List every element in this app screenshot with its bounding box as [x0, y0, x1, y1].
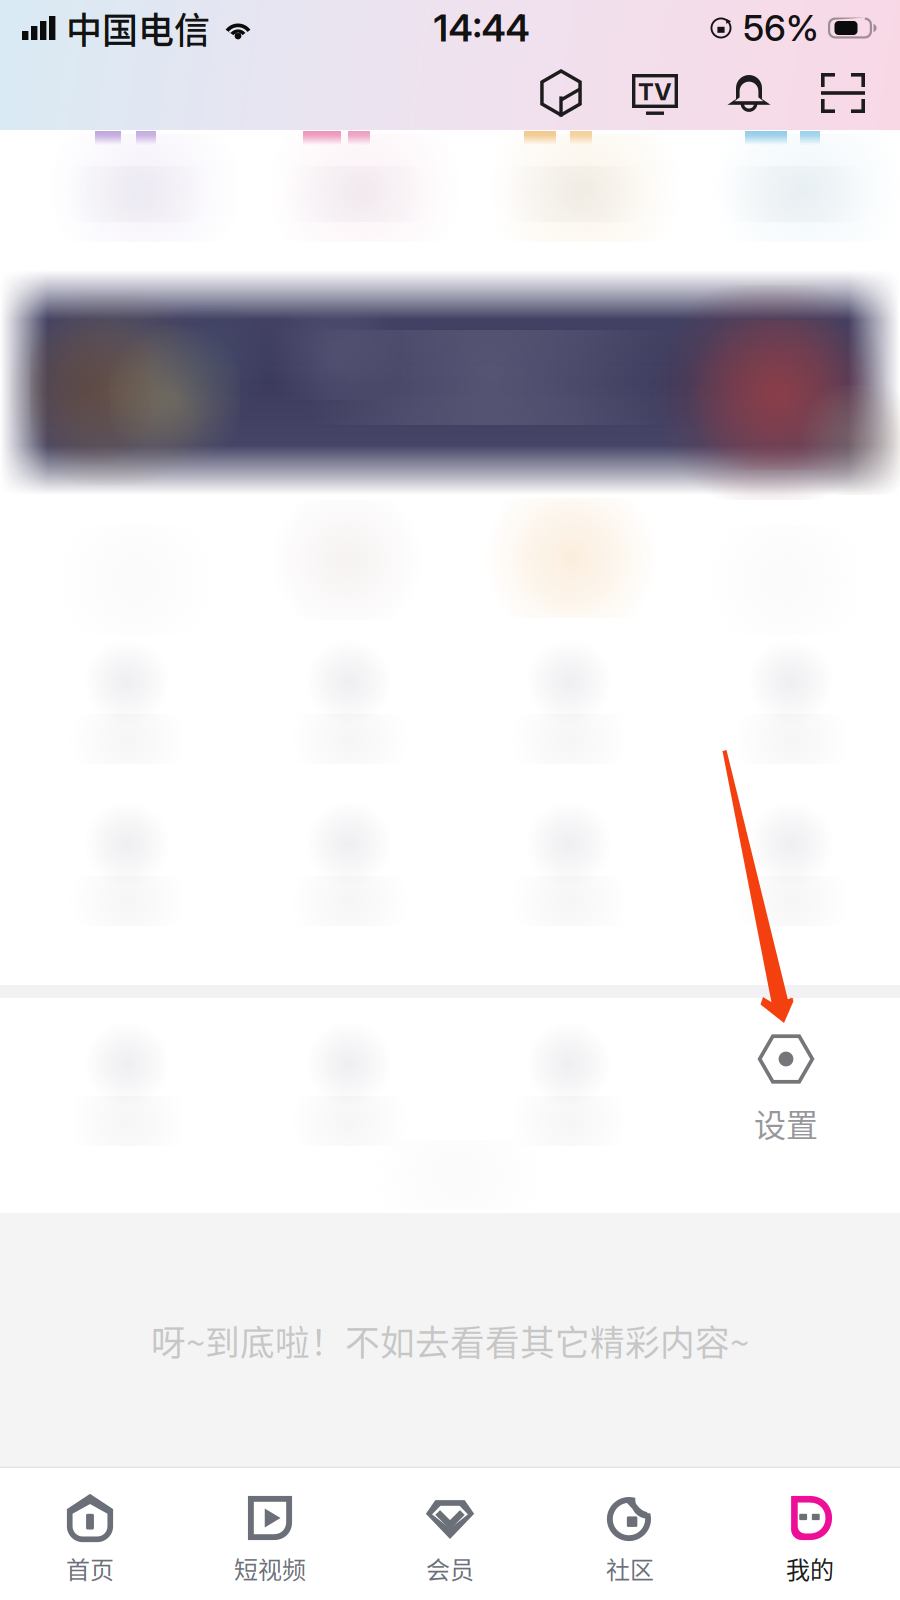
staticText: TV [638, 77, 672, 106]
staticText: 设置 [754, 1100, 818, 1146]
staticText: 短视频 [234, 1551, 306, 1586]
staticText: 呀~到底啦！不如去看看其它精彩内容~ [151, 1316, 749, 1366]
button[interactable]: 扫一扫 [818, 68, 868, 118]
staticText: 会员 [426, 1551, 474, 1586]
button[interactable]: 游戏盒子 [536, 68, 586, 118]
staticText: 14:44 [433, 5, 529, 51]
button[interactable]: 社区 [540, 1468, 720, 1600]
button[interactable]: 电视投屏 [630, 68, 680, 118]
staticText: 社区 [606, 1551, 654, 1586]
button[interactable]: 会员 [360, 1468, 540, 1600]
button[interactable]: 消息通知 [724, 68, 774, 118]
staticText: 中国电信 [66, 2, 210, 54]
button[interactable]: 我的 [720, 1468, 900, 1600]
staticText: 首页 [66, 1551, 114, 1586]
button[interactable]: 首页 [0, 1468, 180, 1600]
staticText: 56% [743, 6, 819, 50]
staticText: 我的 [786, 1551, 834, 1586]
button[interactable]: 设置 [672, 998, 900, 1213]
button[interactable]: 短视频 [180, 1468, 360, 1600]
